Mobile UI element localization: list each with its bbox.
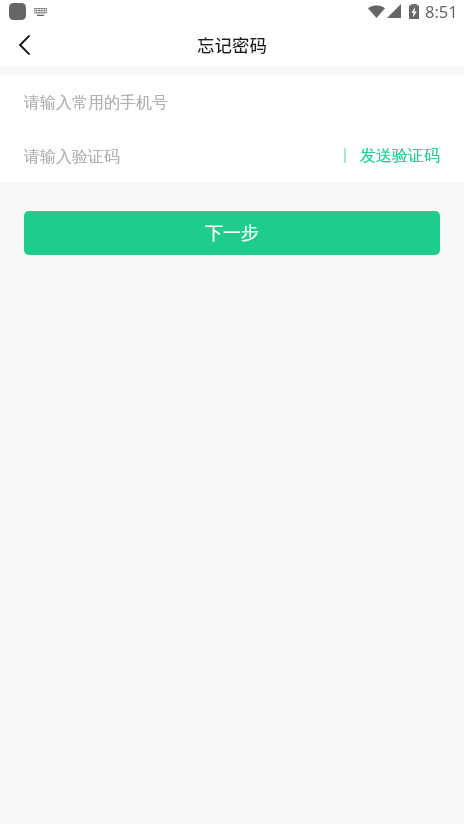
button[interactable]: 发送验证码 [344, 128, 464, 182]
staticText: 发送验证码 [360, 146, 440, 166]
staticText: 请输入常用的手机号 [24, 93, 168, 113]
staticText: 下一步 [205, 222, 259, 244]
staticText: 忘记密码 [197, 32, 267, 57]
button[interactable]: 请输入验证码 [0, 128, 344, 182]
button[interactable]: 请输入常用的手机号 [0, 75, 464, 128]
staticText: 8:51 [425, 0, 458, 22]
button[interactable]: Back [0, 24, 48, 66]
button[interactable]: 下一步 [24, 211, 440, 255]
staticText: 请输入验证码 [24, 147, 120, 167]
